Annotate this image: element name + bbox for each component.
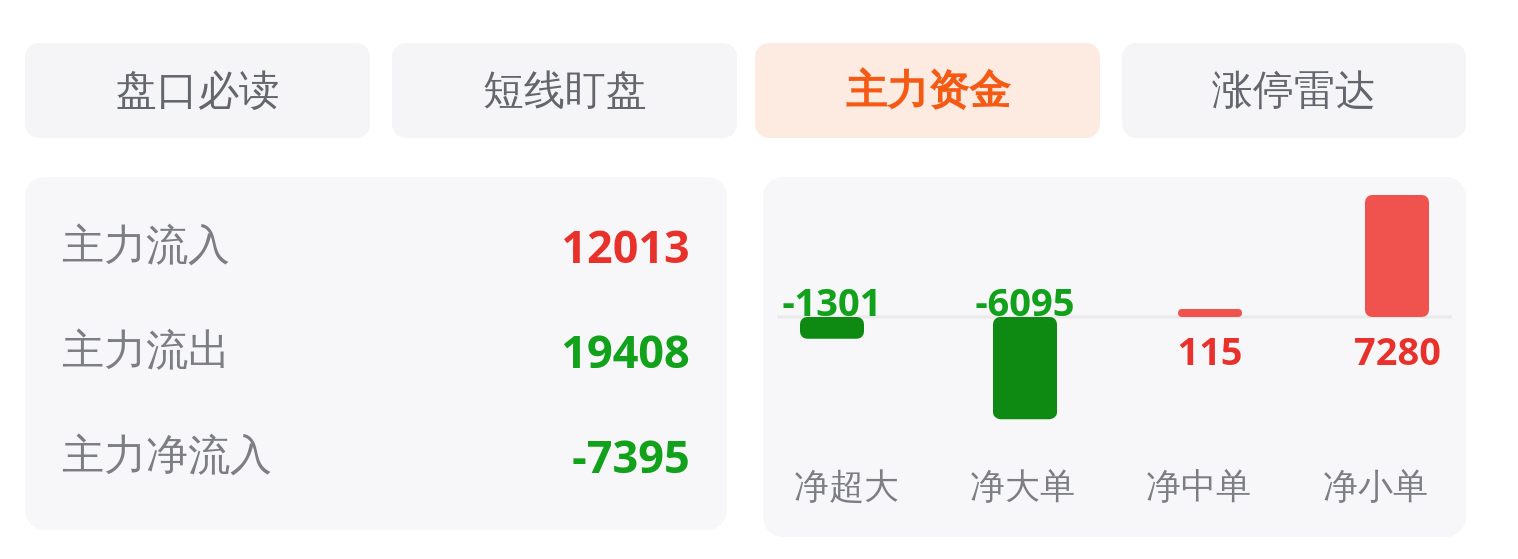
button[interactable]: 主力流入 (25, 177, 727, 530)
staticText: 净中单 (1146, 464, 1251, 508)
staticText: -1301 (782, 275, 882, 327)
staticText: 盘口必读 (116, 65, 280, 117)
button[interactable]: 主力流出 (25, 310, 727, 390)
button[interactable]: 涨停雷达 (1122, 43, 1466, 138)
staticText: 主力流出 (62, 324, 230, 377)
button[interactable]: 盘口必读 (25, 43, 370, 138)
button[interactable]: 主力流入 (25, 205, 727, 285)
staticText: 涨停雷达 (1212, 65, 1376, 117)
staticText: 115 (1177, 324, 1243, 376)
staticText: -6095 (975, 275, 1075, 327)
staticText: 净小单 (1323, 464, 1428, 508)
staticText: 主力资金 (846, 65, 1010, 117)
staticText: 主力流入 (62, 219, 230, 272)
staticText: 净超大 (794, 464, 899, 508)
staticText: 主力净流入 (62, 429, 272, 482)
button[interactable]: 主力净流入 (25, 415, 727, 495)
staticText: 19408 (561, 320, 690, 381)
staticText: 7280 (1354, 324, 1441, 376)
staticText: 净大单 (970, 464, 1075, 508)
staticText: 短线盯盘 (483, 65, 647, 117)
button[interactable]: -1301 (763, 177, 1466, 537)
staticText: 12013 (561, 215, 690, 276)
button[interactable]: 短线盯盘 (392, 43, 737, 138)
button[interactable]: 主力资金 (755, 43, 1100, 138)
staticText: -7395 (572, 425, 690, 486)
